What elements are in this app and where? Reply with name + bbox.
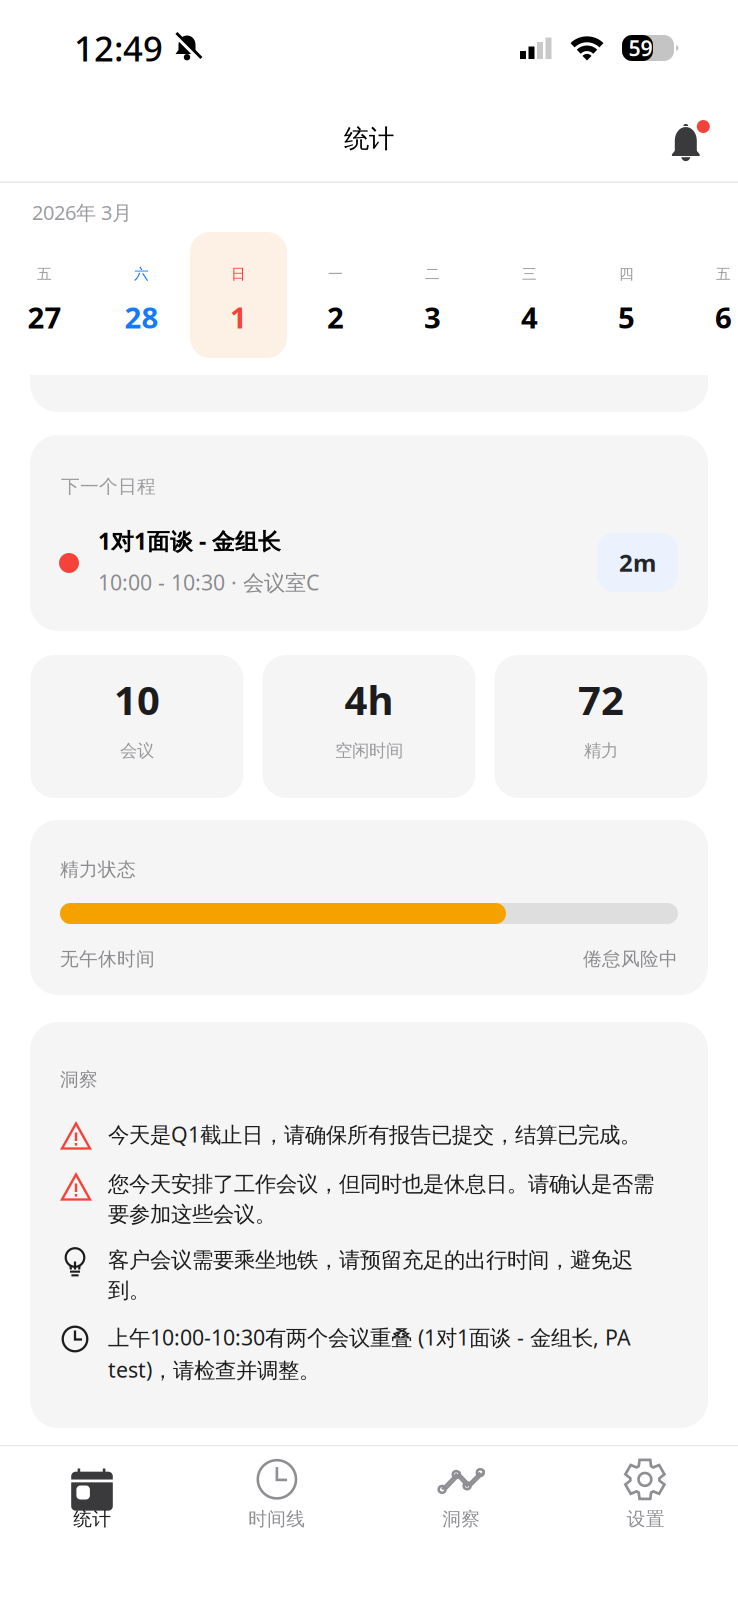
staticText: 下一个日程 (61, 475, 156, 498)
button[interactable]: 洞察 (369, 1446, 553, 1536)
staticText: 10 (114, 673, 160, 726)
staticText: 精力 (584, 740, 618, 761)
staticText: 2 (327, 297, 344, 336)
button[interactable]: 五 (675, 232, 738, 358)
staticText: 5 (618, 297, 635, 336)
button[interactable]: 三 (481, 232, 578, 358)
staticText: 2026年 3月 (32, 199, 132, 226)
button[interactable]: 六 (93, 232, 190, 358)
staticText: 您今天安排了工作会议，但同时也是休息日。请确认是否需要参加这些会议。 (108, 1171, 654, 1227)
staticText: 今天是Q1截止日，请确保所有报告已提交，结算已完成。 (108, 1120, 641, 1148)
staticText: 洞察 (442, 1507, 480, 1530)
staticText: 倦怠风险中 (583, 947, 678, 970)
staticText: 五 (716, 265, 731, 283)
staticText: 精力状态 (60, 858, 136, 881)
button[interactable]: 时间线 (184, 1446, 369, 1536)
staticText: 27 (27, 297, 61, 336)
staticText: 12:49 (74, 25, 163, 71)
staticText: 4 (521, 297, 538, 336)
staticText: 28 (124, 297, 158, 336)
staticText: 1 (230, 297, 247, 336)
button[interactable]: 设置 (553, 1446, 738, 1536)
button[interactable]: 四 (578, 232, 675, 358)
staticText: 时间线 (248, 1507, 305, 1530)
button[interactable]: 五 (0, 232, 93, 358)
button[interactable]: 统计 (0, 1446, 184, 1536)
staticText: 五 (37, 265, 52, 283)
staticText: 6 (715, 297, 732, 336)
button[interactable]: 二 (384, 232, 481, 358)
staticText: 三 (522, 265, 537, 283)
staticText: 设置 (627, 1507, 665, 1530)
staticText: 1对1面谈 - 金组长 (98, 526, 281, 556)
staticText: 日 (231, 265, 246, 283)
button[interactable]: 一 (287, 232, 384, 358)
staticText: 洞察 (60, 1068, 98, 1091)
staticText: 4h (344, 673, 393, 726)
staticText: 统计 (344, 123, 394, 154)
staticText: 四 (619, 265, 634, 283)
staticText: 2m (619, 547, 656, 578)
staticText: 10:00 - 10:30 · 会议室C (98, 568, 319, 596)
button[interactable]: 日 (190, 232, 287, 358)
staticText: 统计 (73, 1507, 111, 1530)
staticText: 一 (328, 265, 343, 283)
staticText: 客户会议需要乘坐地铁，请预留充足的出行时间，避免迟到。 (108, 1247, 633, 1303)
staticText: 会议 (120, 740, 154, 761)
staticText: 上午10:00-10:30有两个会议重叠 (1对1面谈 - 金组长, PA te… (108, 1323, 631, 1384)
staticText: 3 (424, 297, 441, 336)
staticText: 72 (578, 673, 624, 726)
staticText: 六 (134, 265, 149, 283)
staticText: 59 (628, 34, 652, 62)
staticText: 空闲时间 (335, 740, 403, 761)
staticText: 二 (425, 265, 440, 283)
staticText: 无午休时间 (60, 947, 155, 970)
button[interactable]: 通知 (669, 111, 717, 163)
